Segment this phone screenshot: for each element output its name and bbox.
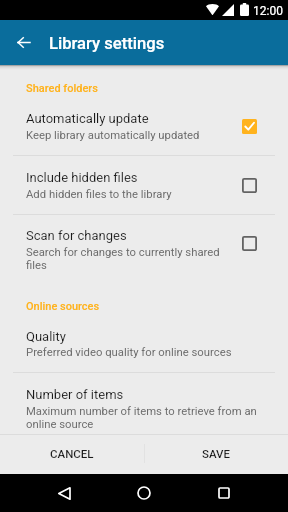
button[interactable]: [0, 65, 288, 155]
button[interactable]: [0, 155, 288, 214]
staticText: Maximum number of items to retrieve from…: [26, 405, 264, 430]
button[interactable]: [0, 315, 288, 372]
staticText: Library settings: [49, 34, 165, 53]
staticText: Shared folders: [26, 82, 98, 95]
staticText: CANCEL: [50, 447, 94, 460]
button[interactable]: SAVE: [145, 434, 288, 473]
staticText: Number of items: [26, 387, 124, 402]
button[interactable]: Back: [44, 474, 84, 512]
staticText: Automatically update: [26, 111, 149, 126]
button[interactable]: Recent apps: [204, 474, 244, 512]
button[interactable]: CANCEL: [0, 434, 143, 473]
staticText: SAVE: [202, 447, 231, 460]
staticText: Search for changes to currently shared f…: [26, 246, 221, 271]
staticText: Quality: [26, 329, 66, 344]
staticText: Online sources: [26, 300, 100, 313]
button[interactable]: Navigate up: [0, 20, 46, 65]
button[interactable]: Home: [124, 474, 164, 512]
staticText: Keep library automatically updated: [26, 129, 200, 142]
button[interactable]: [0, 214, 288, 285]
staticText: Add hidden files to the library: [26, 188, 172, 201]
staticText: Scan for changes: [26, 228, 127, 243]
staticText: 12:00: [253, 4, 283, 18]
staticText: Include hidden files: [26, 170, 138, 185]
button[interactable]: [0, 372, 288, 433]
staticText: Preferred video quality for online sourc…: [26, 346, 232, 359]
